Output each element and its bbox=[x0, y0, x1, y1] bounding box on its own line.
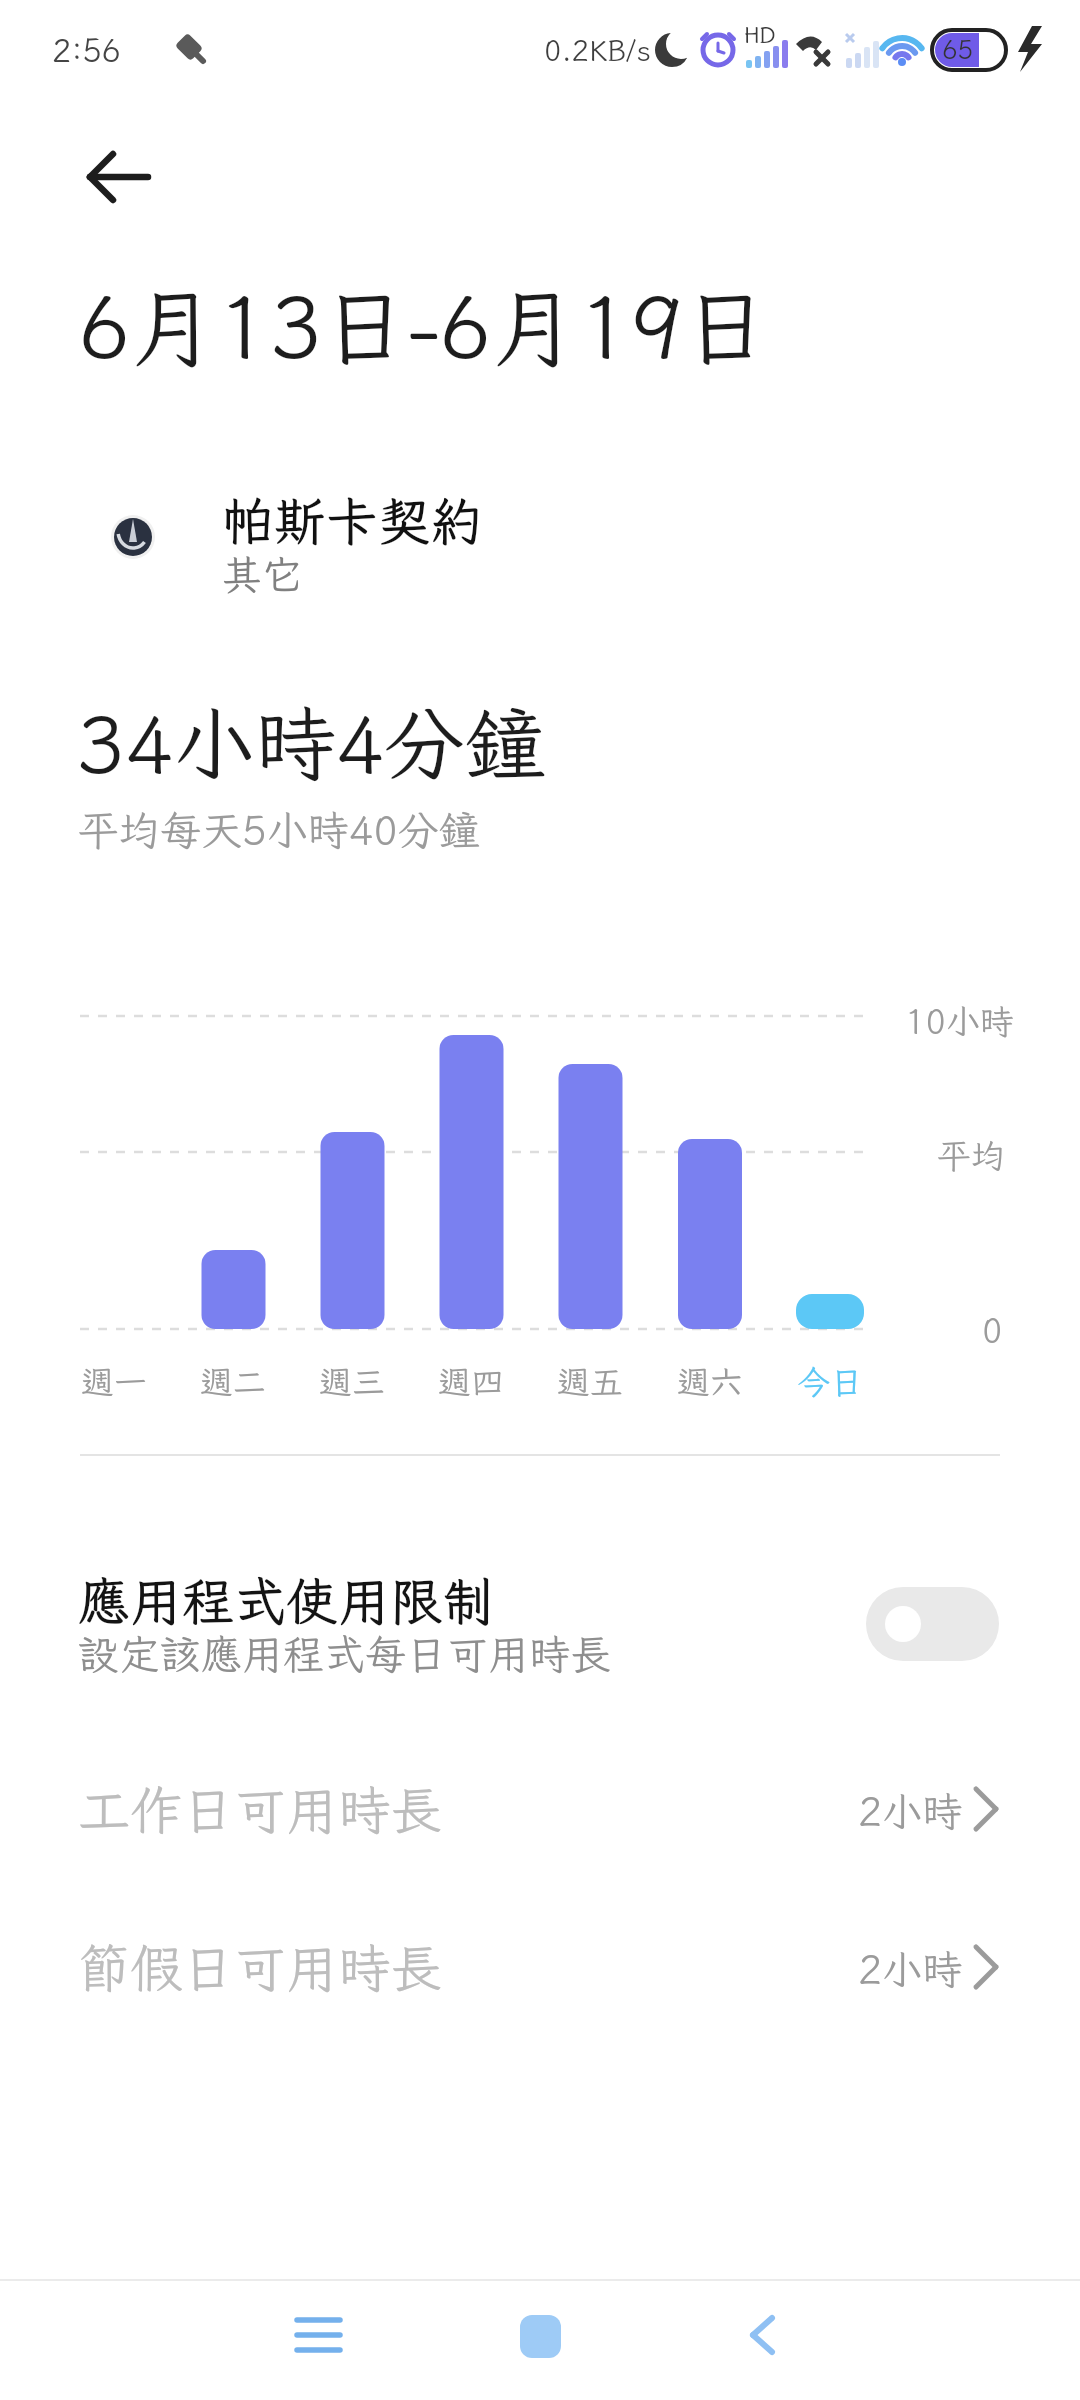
staticText: 2小時 bbox=[858, 1785, 962, 1838]
staticText: 帕斯卡契約 bbox=[222, 486, 483, 554]
button[interactable]: 工作日可用時長 bbox=[0, 1745, 1080, 1875]
staticText: 今日 bbox=[797, 1360, 863, 1403]
button[interactable]: 帕斯卡契約 bbox=[0, 490, 1080, 600]
button[interactable] bbox=[715, 2290, 815, 2380]
staticText: 6月13日-6月19日 bbox=[78, 268, 770, 383]
button[interactable]: 應用程式使用限制 bbox=[0, 1560, 1080, 1690]
staticText: 10小時 bbox=[905, 999, 1014, 1044]
staticText: 工作日可用時長 bbox=[78, 1775, 443, 1843]
staticText: 週五 bbox=[557, 1360, 623, 1403]
staticText: 0 bbox=[982, 1308, 1003, 1353]
staticText: 週四 bbox=[438, 1360, 504, 1403]
staticText: 設定該應用程式每日可用時長 bbox=[78, 1627, 611, 1681]
staticText: 週六 bbox=[677, 1360, 743, 1403]
staticText: 0.2KB/s bbox=[544, 31, 652, 69]
staticText: 平均 bbox=[937, 1133, 1005, 1178]
staticText: 2小時 bbox=[858, 1943, 962, 1996]
button[interactable] bbox=[70, 135, 166, 221]
staticText: 65 bbox=[942, 32, 974, 66]
staticText: 其它 bbox=[222, 548, 302, 601]
staticText: 2:56 bbox=[52, 29, 121, 71]
button[interactable]: 節假日可用時長 bbox=[0, 1903, 1080, 2033]
staticText: 週三 bbox=[319, 1360, 385, 1403]
button[interactable] bbox=[270, 2290, 370, 2380]
staticText: 34小時4分鐘 bbox=[76, 689, 546, 796]
staticText: 應用程式使用限制 bbox=[78, 1566, 495, 1634]
staticText: 週二 bbox=[200, 1360, 266, 1403]
staticText: 節假日可用時長 bbox=[78, 1933, 443, 2001]
staticText: 平均每天5小時40分鐘 bbox=[78, 803, 480, 857]
staticText: 週一 bbox=[81, 1360, 147, 1403]
staticText: HD bbox=[744, 20, 776, 49]
button[interactable] bbox=[490, 2290, 590, 2380]
